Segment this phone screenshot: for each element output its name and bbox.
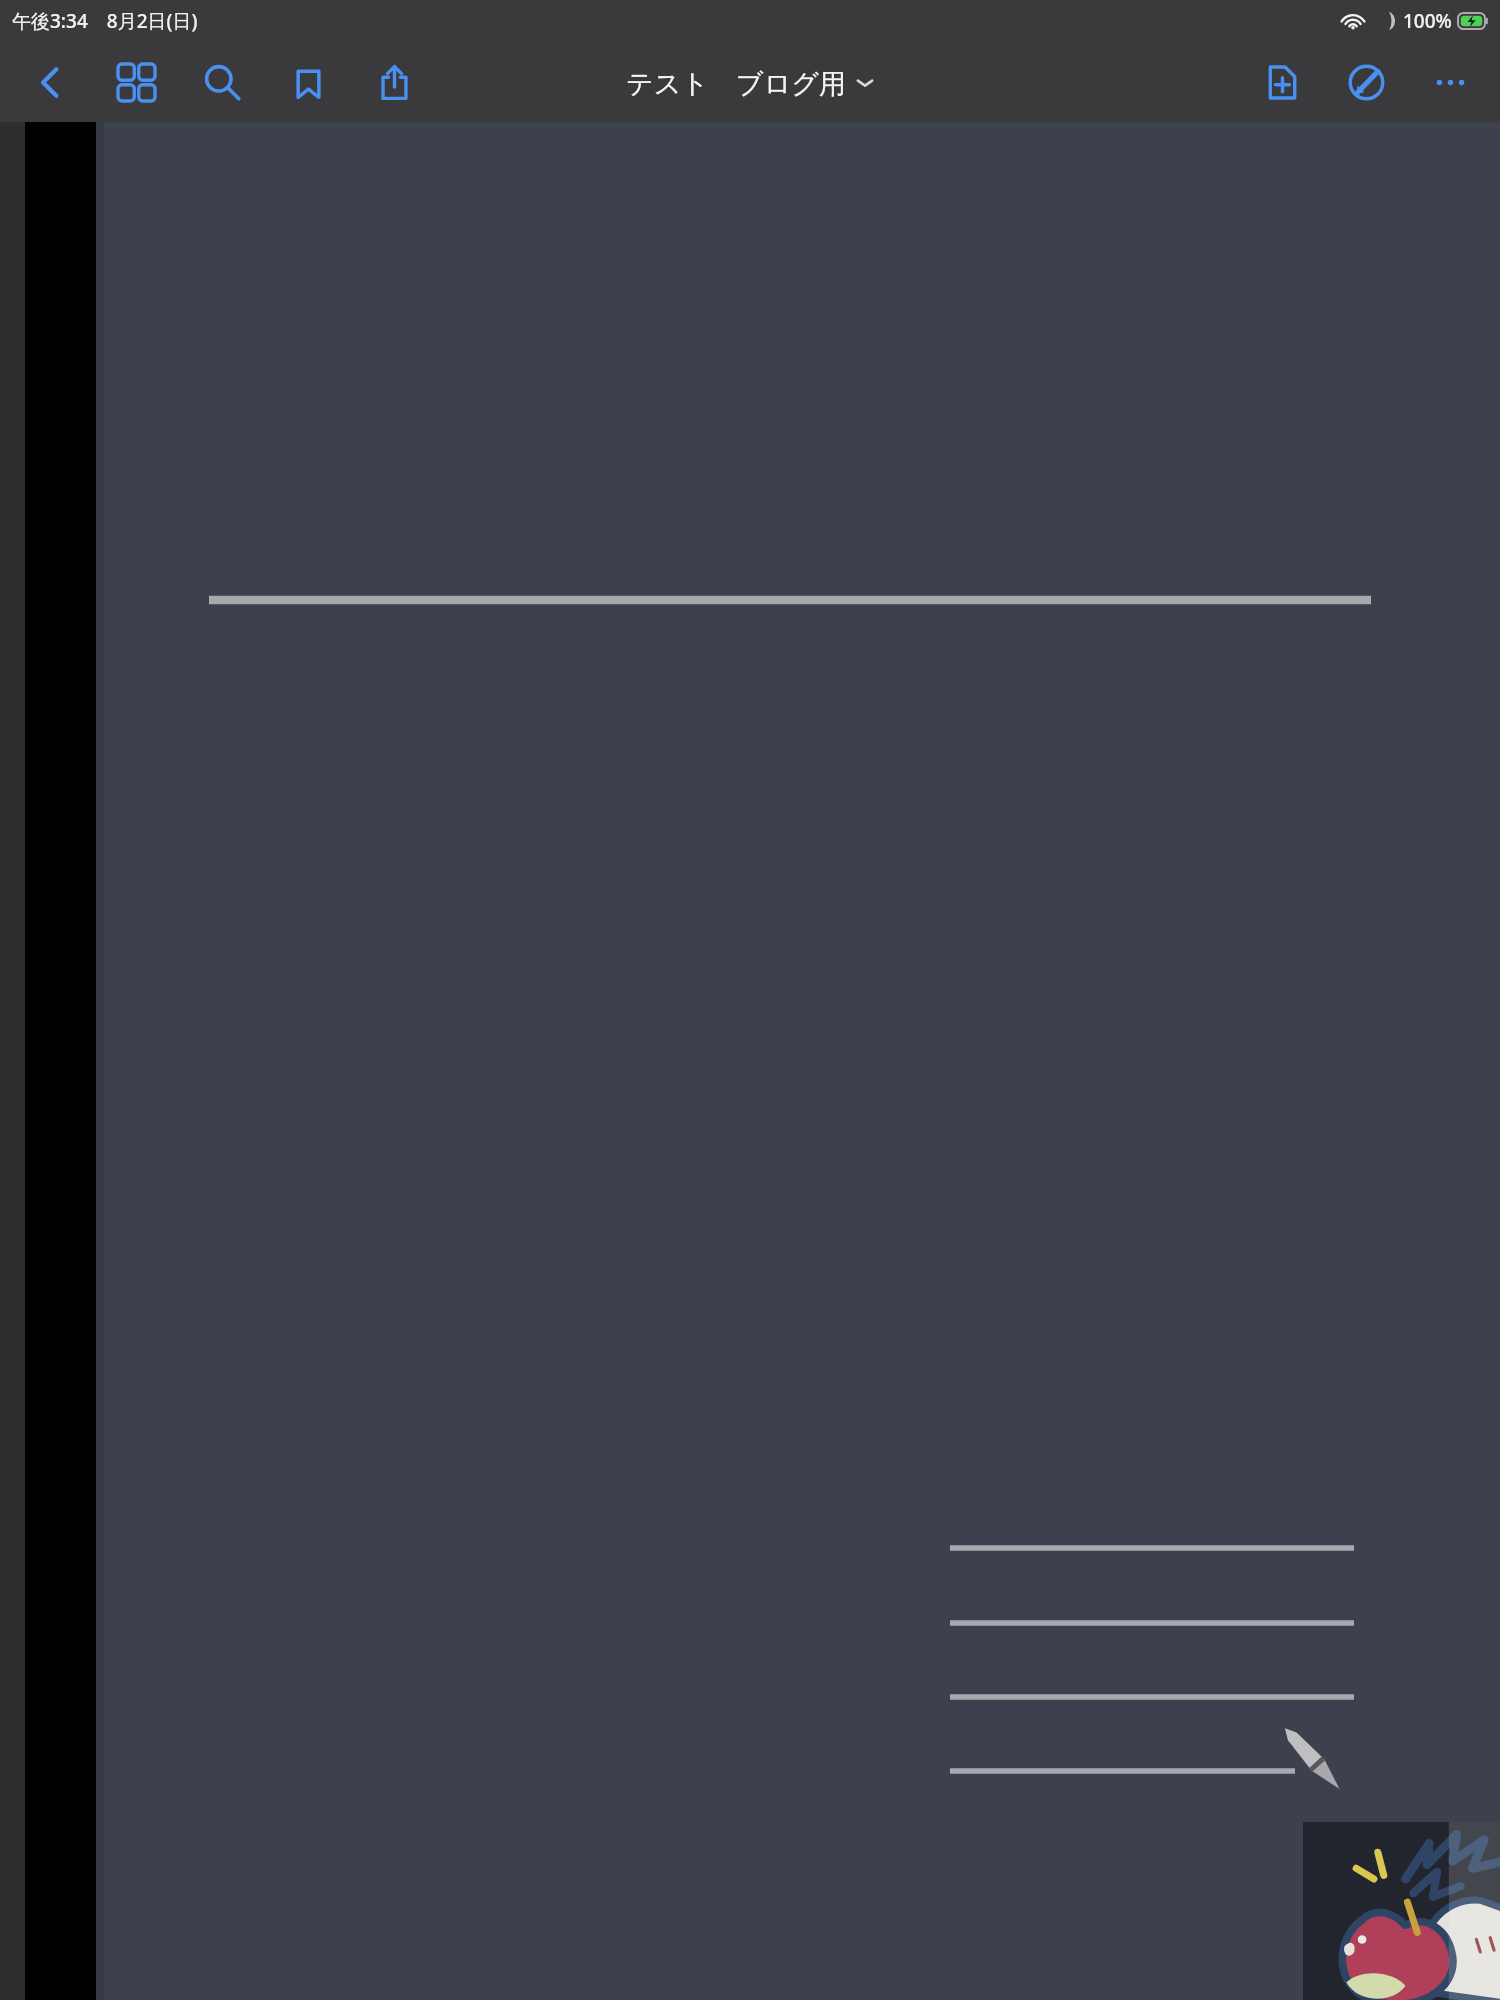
button[interactable]: Back [22, 54, 78, 110]
staticText: 100% [1403, 8, 1452, 34]
button[interactable]: Share [366, 54, 422, 110]
button[interactable]: Inserted image [1303, 1822, 1500, 2000]
button[interactable]: テスト ブログ用 [618, 60, 882, 105]
button[interactable]: New document [1254, 54, 1310, 110]
button[interactable]: Search [194, 54, 250, 110]
button[interactable]: Bookmark [280, 54, 336, 110]
button[interactable]: Grid view [108, 54, 164, 110]
button[interactable]: Markup [1338, 54, 1394, 110]
staticText: テスト ブログ用 [626, 64, 846, 101]
staticText: 午後3:34 8月2日(日) [12, 8, 198, 34]
button[interactable]: More options [1422, 54, 1478, 110]
